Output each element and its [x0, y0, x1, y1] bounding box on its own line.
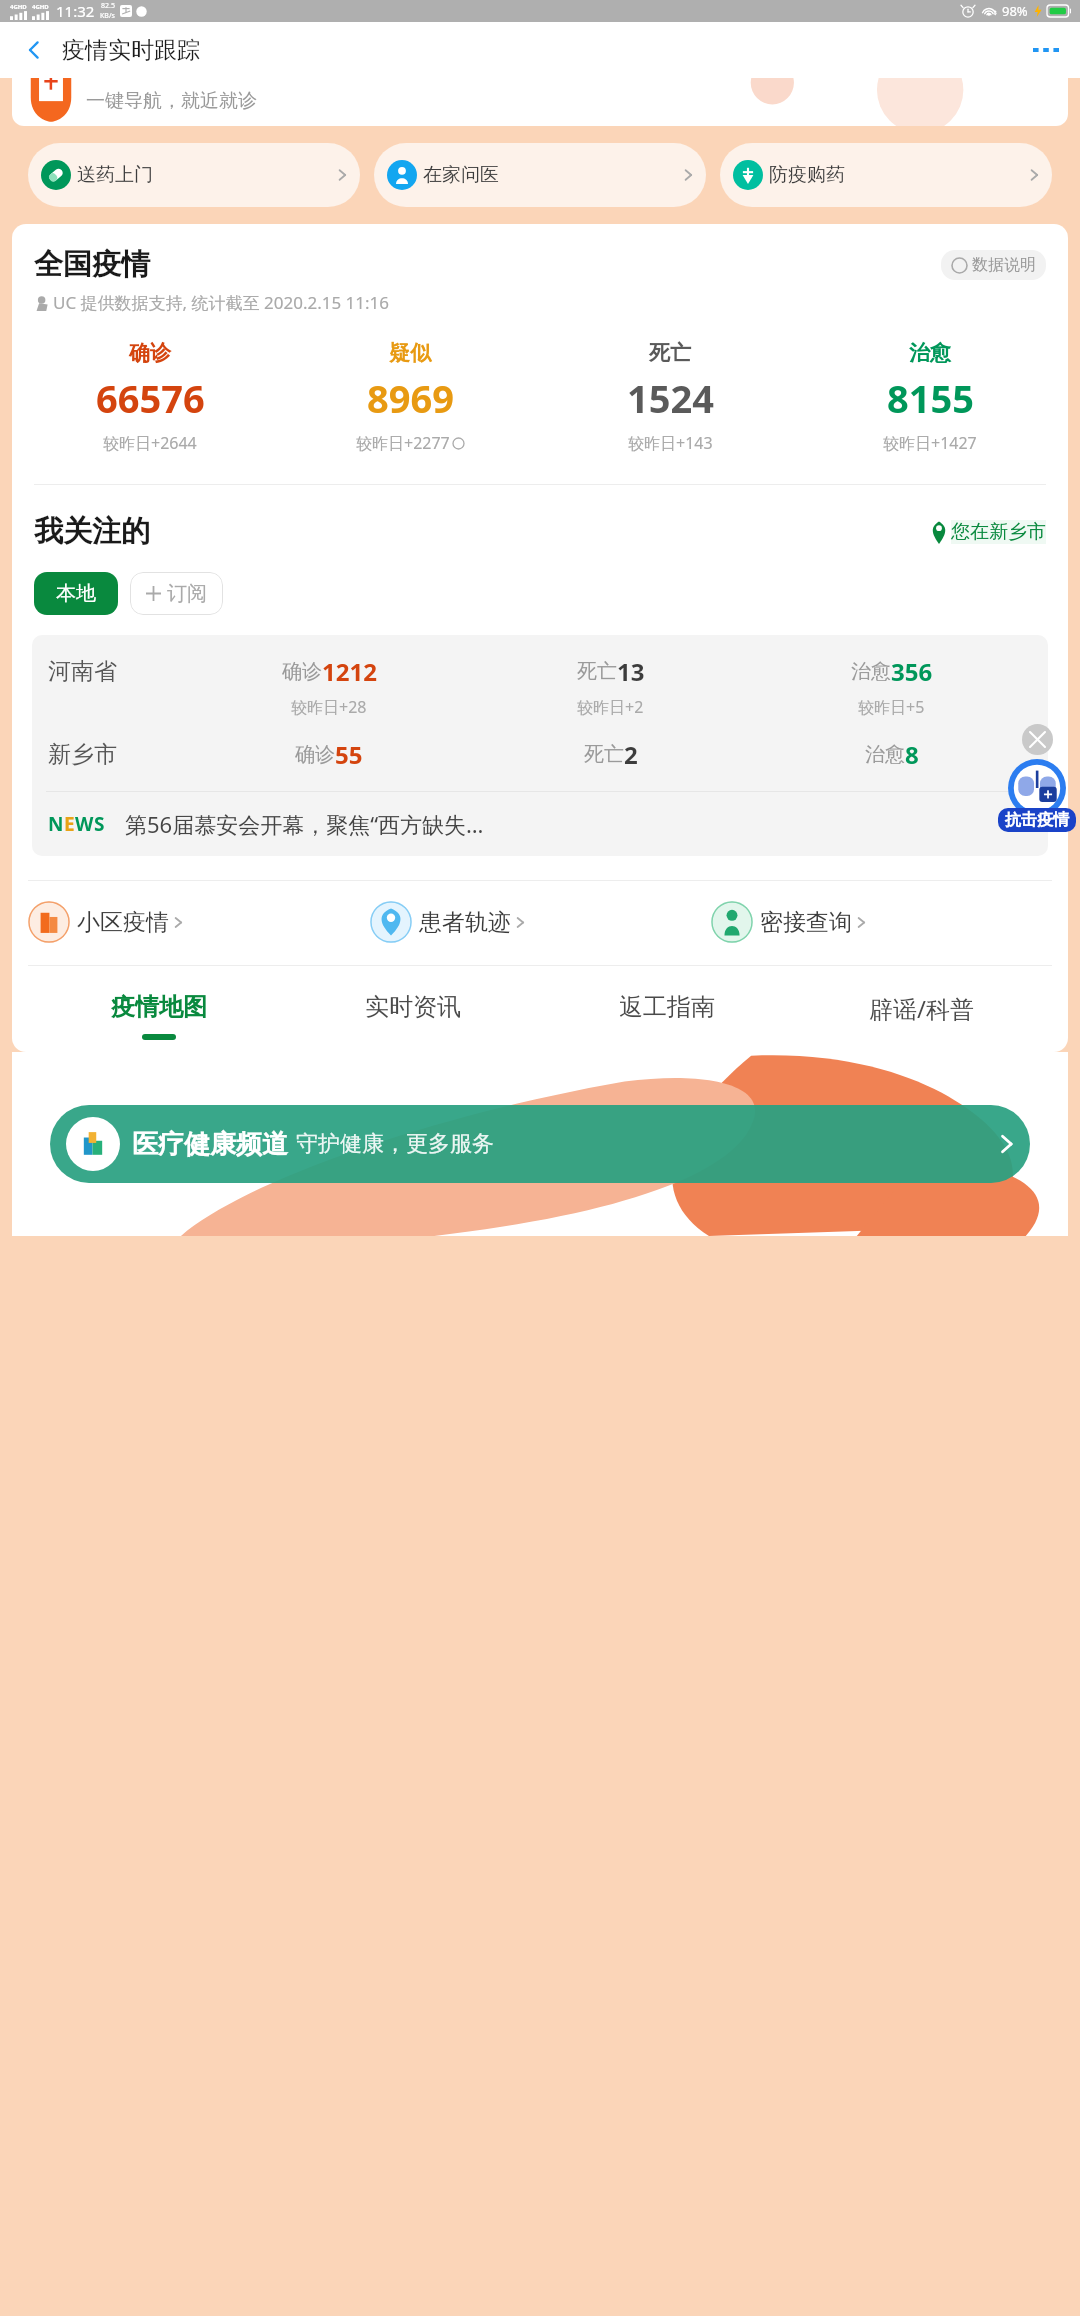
button[interactable]: 医疗健康频道 [50, 1105, 1030, 1183]
button[interactable]: 订阅 [130, 572, 223, 615]
staticText: 较昨日+28 [291, 696, 367, 718]
button[interactable]: 抗击疫情 [998, 808, 1076, 832]
button[interactable]: 抗击疫情 [1008, 759, 1066, 817]
button[interactable]: 实时资讯 [286, 992, 540, 1034]
staticText: 死亡 [577, 659, 617, 684]
button[interactable]: More options [1024, 28, 1068, 72]
staticText: 新乡市 [48, 740, 188, 769]
staticText: 较昨日+5 [858, 696, 925, 718]
staticText: 356 [891, 655, 933, 688]
staticText: 较昨日+143 [628, 432, 713, 454]
staticText: 辟谣/科普 [869, 992, 974, 1025]
staticText: 本地 [56, 581, 96, 606]
button[interactable]: 本地 [34, 572, 118, 615]
button[interactable]: 小区疫情 [28, 901, 370, 943]
staticText: 患者轨迹 [419, 908, 511, 937]
staticText: N [48, 811, 64, 837]
button[interactable]: 返工指南 [540, 992, 794, 1034]
staticText: UC 提供数据支持, 统计截至 2020.2.15 11:16 [53, 291, 390, 314]
staticText: 13 [617, 655, 645, 688]
staticText: 防疫购药 [769, 163, 845, 187]
staticText: W [75, 811, 94, 837]
staticText: 较昨日+2644 [103, 432, 197, 454]
staticText: 治愈 [909, 340, 951, 366]
button[interactable]: 患者轨迹 [370, 901, 711, 943]
staticText: 确诊 [282, 659, 322, 684]
staticText: 抗击疫情 [1005, 810, 1069, 830]
button[interactable]: 防疫购药 [720, 143, 1052, 207]
staticText: 8 [905, 738, 919, 771]
staticText: 小区疫情 [77, 908, 169, 937]
staticText: 82.5 [101, 1, 115, 11]
button[interactable]: 疫情地图 [32, 992, 286, 1040]
button[interactable]: 河南省 [48, 655, 1032, 718]
staticText: 医疗健康频道 [132, 1128, 288, 1161]
staticText: 66576 [96, 372, 205, 424]
staticText: 8155 [887, 372, 974, 424]
staticText: 守护健康，更多服务 [296, 1130, 494, 1158]
staticText: 1524 [627, 372, 714, 424]
staticText: 4GHD [32, 3, 49, 11]
button[interactable]: 新乡市 [48, 738, 1032, 771]
staticText: 治愈 [865, 742, 905, 767]
staticText: 98% [1002, 2, 1028, 20]
staticText: 第56届慕安会开幕，聚焦“西方缺失… [125, 809, 484, 839]
staticText: 疫情实时跟踪 [62, 36, 200, 65]
button[interactable]: 死亡 [540, 340, 800, 454]
staticText: 55 [335, 738, 363, 771]
button[interactable]: 送药上门 [28, 143, 360, 207]
staticText: 密接查询 [760, 908, 852, 937]
staticText: 送药上门 [77, 163, 153, 187]
staticText: S [94, 811, 105, 837]
staticText: 您在新乡市 [951, 520, 1046, 544]
staticText: 1212 [322, 655, 377, 688]
button[interactable]: Back [12, 28, 56, 72]
staticText: 数据说明 [972, 255, 1036, 275]
staticText: 治愈 [851, 659, 891, 684]
button[interactable]: 密接查询 [711, 901, 1052, 943]
staticText: 订阅 [167, 581, 207, 606]
staticText: 较昨日+2277 [356, 432, 450, 454]
staticText: KB/s [100, 11, 115, 21]
staticText: 死亡 [584, 742, 624, 767]
staticText: 返工指南 [619, 992, 715, 1022]
staticText: 疫情地图 [111, 992, 207, 1022]
staticText: 较昨日+2 [577, 696, 644, 718]
button[interactable]: 治愈 [800, 340, 1060, 454]
button[interactable]: 确诊 [20, 340, 280, 454]
staticText: 我关注的 [34, 513, 150, 550]
button[interactable]: 您在新乡市 [930, 520, 1046, 544]
button[interactable]: 数据说明 [941, 250, 1046, 280]
staticText: E [64, 811, 75, 837]
button[interactable]: N [32, 792, 1048, 856]
button[interactable]: Close [1022, 724, 1053, 755]
staticText: 4GHD [10, 3, 27, 11]
button[interactable]: 在家问医 [374, 143, 706, 207]
staticText: 确诊 [295, 742, 335, 767]
staticText: 河南省 [48, 657, 188, 686]
button[interactable]: 辟谣/科普 [794, 992, 1048, 1037]
staticText: 一键导航，就近就诊 [86, 89, 257, 113]
staticText: 较昨日+1427 [883, 432, 977, 454]
staticText: 11:32 [56, 1, 95, 21]
button[interactable]: 一键导航，就近就诊 [12, 78, 1068, 126]
staticText: 8969 [367, 372, 454, 424]
staticText: 实时资讯 [365, 992, 461, 1022]
staticText: 确诊 [129, 340, 171, 366]
button[interactable]: 疑似 [280, 340, 540, 454]
staticText: 疑似 [389, 340, 431, 366]
staticText: 在家问医 [423, 163, 499, 187]
staticText: 2 [624, 738, 638, 771]
staticText: 死亡 [649, 340, 691, 366]
staticText: 全国疫情 [34, 246, 150, 283]
